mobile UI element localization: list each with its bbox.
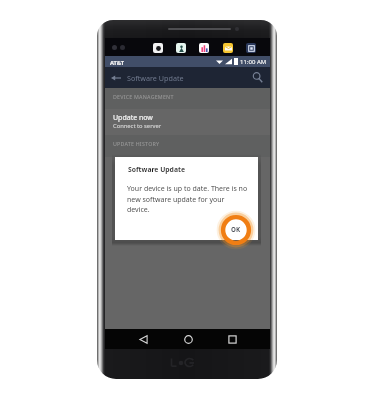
- staticText: Update now: [113, 113, 153, 123]
- button[interactable]: Home: [178, 329, 198, 349]
- staticText: OK: [231, 225, 241, 233]
- staticText: UPDATE HISTORY: [113, 140, 160, 147]
- staticText: Software Update: [128, 165, 185, 174]
- button[interactable]: Back: [133, 329, 153, 349]
- button[interactable]: Recent apps: [222, 329, 242, 349]
- staticText: Connect to server: [113, 122, 162, 130]
- staticText: Software Update: [127, 73, 184, 83]
- button[interactable]: Update now: [105, 109, 270, 136]
- button[interactable]: Navigate up: [105, 67, 126, 88]
- staticText: Your device is up to date. There is no n…: [127, 184, 248, 214]
- button[interactable]: Search: [247, 67, 267, 88]
- staticText: AT&T: [110, 59, 125, 67]
- button[interactable]: OK: [220, 214, 252, 246]
- staticText: DEVICE MANAGEMENT: [113, 93, 174, 100]
- staticText: 11:00 AM: [240, 58, 267, 66]
